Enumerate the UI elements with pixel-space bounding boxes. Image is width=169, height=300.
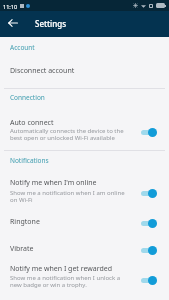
button[interactable]: Notify me when I'm online (0, 177, 169, 188)
staticText: best open or unlocked Wi-Fi available (10, 134, 115, 142)
button[interactable]: Auto connect (0, 117, 169, 128)
button[interactable]: Vibrate (0, 243, 169, 254)
button[interactable]: Toggle (141, 245, 161, 256)
staticText: Notify me when I'm online (10, 178, 97, 188)
staticText: Show me a notification when I unlock a (10, 274, 121, 282)
staticText: Notify me when I get rewarded (10, 264, 113, 274)
button[interactable]: Toggle (141, 127, 161, 138)
button[interactable]: Notify me when I get rewarded (0, 263, 169, 274)
button[interactable]: Disconnect account (0, 65, 169, 76)
staticText: Notifications (10, 156, 49, 165)
button[interactable]: Back (0, 10, 26, 36)
staticText: Disconnect account (10, 66, 75, 76)
staticText: Connection (10, 93, 45, 102)
staticText: Auto connect (10, 118, 54, 128)
staticText: Ringtone (10, 217, 40, 227)
button[interactable]: Toggle (141, 275, 161, 286)
staticText: 11:10 (3, 3, 18, 10)
button[interactable]: Toggle (141, 218, 161, 229)
staticText: Show me a notification when I am online (10, 189, 125, 197)
staticText: Account (10, 43, 35, 52)
staticText: Settings (35, 18, 67, 29)
staticText: Vibrate (10, 244, 34, 254)
button[interactable]: Ringtone (0, 216, 169, 227)
button[interactable]: Toggle (141, 188, 161, 199)
staticText: Automatically connects the device to the (10, 127, 124, 135)
staticText: new badge or win a trophy. (10, 281, 87, 289)
staticText: on Wi-Fi (10, 196, 33, 204)
